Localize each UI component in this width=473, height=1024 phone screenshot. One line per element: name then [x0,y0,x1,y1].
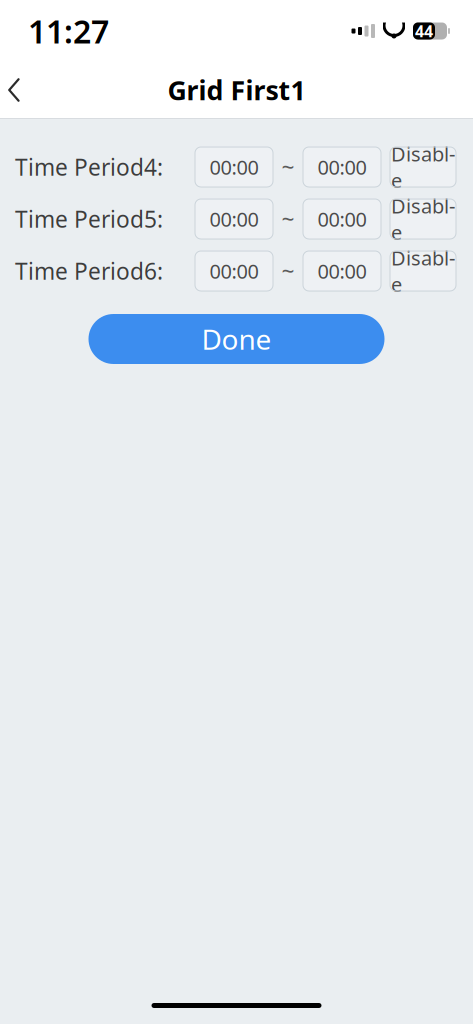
staticText: ~ [281,256,294,286]
staticText: Grid First1 [167,72,305,108]
button[interactable]: 00:00 [303,147,381,187]
staticText: Time Period4: [15,152,163,182]
button[interactable]: Done [88,314,384,364]
staticText: 11:27 [28,10,109,52]
button[interactable]: Disable [381,147,456,187]
button[interactable]: Disable [381,199,456,239]
button[interactable]: Disable [381,251,456,291]
button[interactable]: 00:00 [195,251,273,291]
staticText: Time Period6: [15,256,163,286]
staticText: 00:00 [317,258,366,284]
staticText: ~ [281,204,294,234]
staticText: Disable [391,244,455,297]
staticText: 00:00 [317,206,366,232]
staticText: Done [201,320,271,358]
staticText: 00:00 [209,258,258,284]
button[interactable]: 00:00 [195,199,273,239]
button[interactable]: Back [0,62,37,118]
staticText: 00:00 [317,154,366,180]
staticText: 00:00 [209,154,258,180]
button[interactable]: 00:00 [303,199,381,239]
staticText: ~ [281,152,294,182]
staticText: Time Period5: [15,204,163,234]
staticText: 00:00 [209,206,258,232]
staticText: 44 [415,20,433,42]
staticText: Disable [391,140,455,193]
staticText: Disable [391,192,455,245]
button[interactable]: 00:00 [303,251,381,291]
button[interactable]: 00:00 [195,147,273,187]
